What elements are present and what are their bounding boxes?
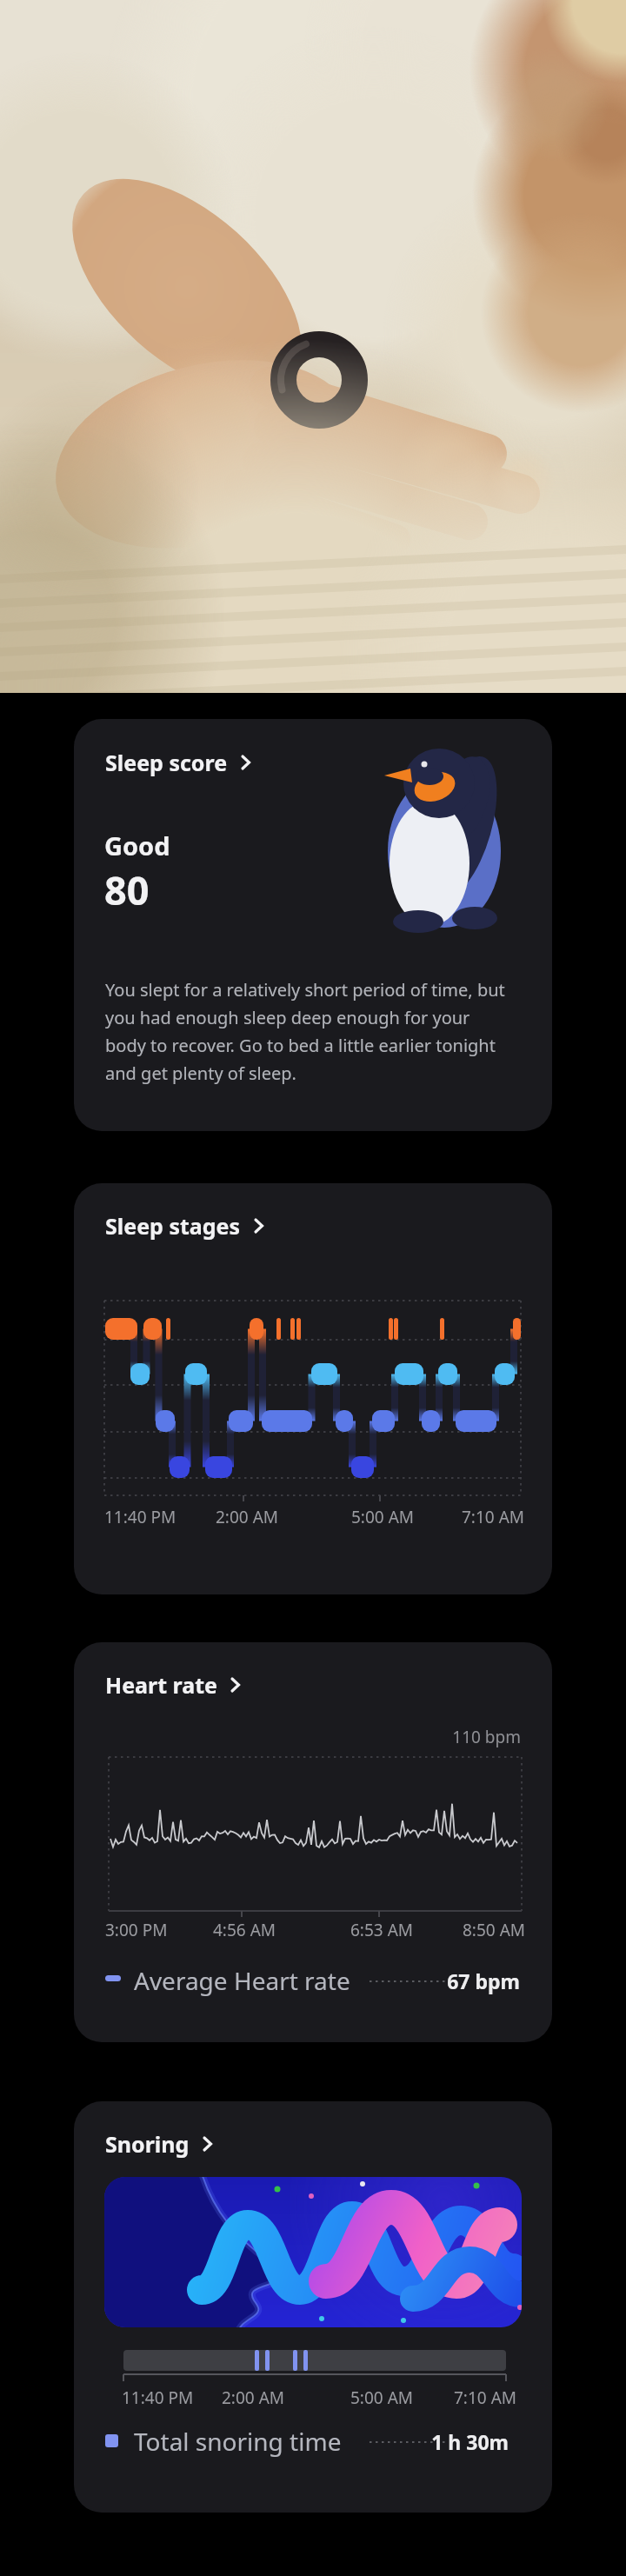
staticText: 4:56 AM: [213, 1919, 276, 1941]
staticText: Total snoring time: [134, 2425, 342, 2458]
staticText: 110 bpm: [364, 1726, 521, 2042]
staticText: Snoring: [105, 2129, 190, 2159]
staticText: Average Heart rate: [134, 1964, 350, 1997]
staticText: Good: [104, 829, 170, 862]
staticText: 8:50 AM: [463, 1919, 526, 1941]
staticText: 2:00 AM: [222, 2386, 285, 2409]
staticText: You slept for a relatively short period …: [105, 978, 550, 1085]
staticText: 5:00 AM: [350, 2386, 414, 2409]
button[interactable]: Snoring: [105, 2129, 214, 2159]
staticText: 7:10 AM: [454, 2386, 517, 2409]
staticText: 1 h 30m: [422, 2428, 509, 2513]
staticText: 11:40 PM: [122, 2386, 194, 2409]
staticText: 3:00 PM: [105, 1919, 168, 1941]
button[interactable]: [104, 2177, 522, 2327]
staticText: 5:00 AM: [351, 1506, 415, 1528]
button[interactable]: Sleep stages: [74, 1183, 552, 1594]
button[interactable]: Sleep score: [105, 748, 252, 777]
button[interactable]: Heart rate: [74, 1642, 552, 2042]
button[interactable]: Heart rate: [105, 1670, 242, 1700]
staticText: 80: [104, 863, 150, 916]
button[interactable]: Snoring: [74, 2101, 552, 2513]
staticText: 7:10 AM: [462, 1506, 525, 1528]
staticText: Sleep stages: [105, 1211, 241, 1241]
button[interactable]: Sleep score: [74, 719, 552, 1131]
staticText: 2:00 AM: [216, 1506, 279, 1528]
staticText: Sleep score: [105, 748, 228, 777]
staticText: 67 bpm: [433, 1967, 520, 2042]
staticText: 11:40 PM: [104, 1506, 176, 1528]
button[interactable]: Sleep stages: [105, 1211, 265, 1241]
staticText: Heart rate: [105, 1670, 217, 1700]
staticText: 6:53 AM: [350, 1919, 414, 1941]
